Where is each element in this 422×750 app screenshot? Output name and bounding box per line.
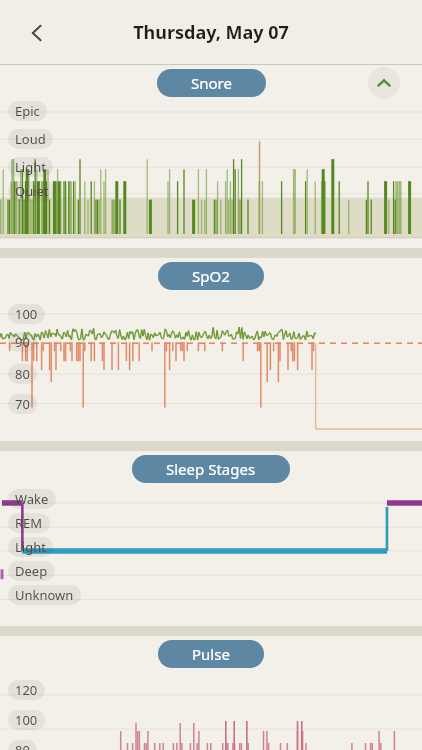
staticText: Epic	[15, 102, 40, 120]
staticText: REM	[15, 514, 43, 532]
staticText: 100	[15, 305, 38, 323]
staticText: SpO2	[192, 266, 230, 286]
staticText: Sleep Stages	[166, 459, 256, 479]
button[interactable]: Collapse	[368, 67, 400, 99]
staticText: 100	[15, 711, 38, 729]
button[interactable]: Sleep Stages	[132, 455, 290, 483]
staticText: 80	[15, 741, 30, 750]
button[interactable]: Wake	[0, 487, 422, 626]
button[interactable]: Epic	[0, 101, 422, 248]
staticText: 80	[15, 365, 30, 383]
staticText: 120	[15, 681, 38, 699]
staticText: Unknown	[15, 586, 74, 604]
button[interactable]: 100	[0, 294, 422, 441]
staticText: Thursday, May 07	[133, 20, 289, 45]
button[interactable]: 120	[0, 672, 422, 750]
button[interactable]: SpO2	[158, 262, 264, 290]
staticText: Light	[15, 158, 46, 176]
button[interactable]: Pulse	[158, 640, 264, 668]
staticText: Loud	[15, 130, 46, 148]
staticText: Wake	[15, 490, 49, 508]
staticText: Snore	[191, 73, 232, 93]
button[interactable]: Back	[14, 9, 62, 57]
staticText: Deep	[15, 562, 48, 580]
staticText: Quiet	[15, 182, 49, 200]
staticText: Pulse	[192, 644, 230, 664]
staticText: 70	[15, 395, 30, 413]
staticText: Light	[15, 538, 46, 556]
staticText: 90	[15, 333, 30, 351]
button[interactable]: Snore	[157, 69, 266, 97]
